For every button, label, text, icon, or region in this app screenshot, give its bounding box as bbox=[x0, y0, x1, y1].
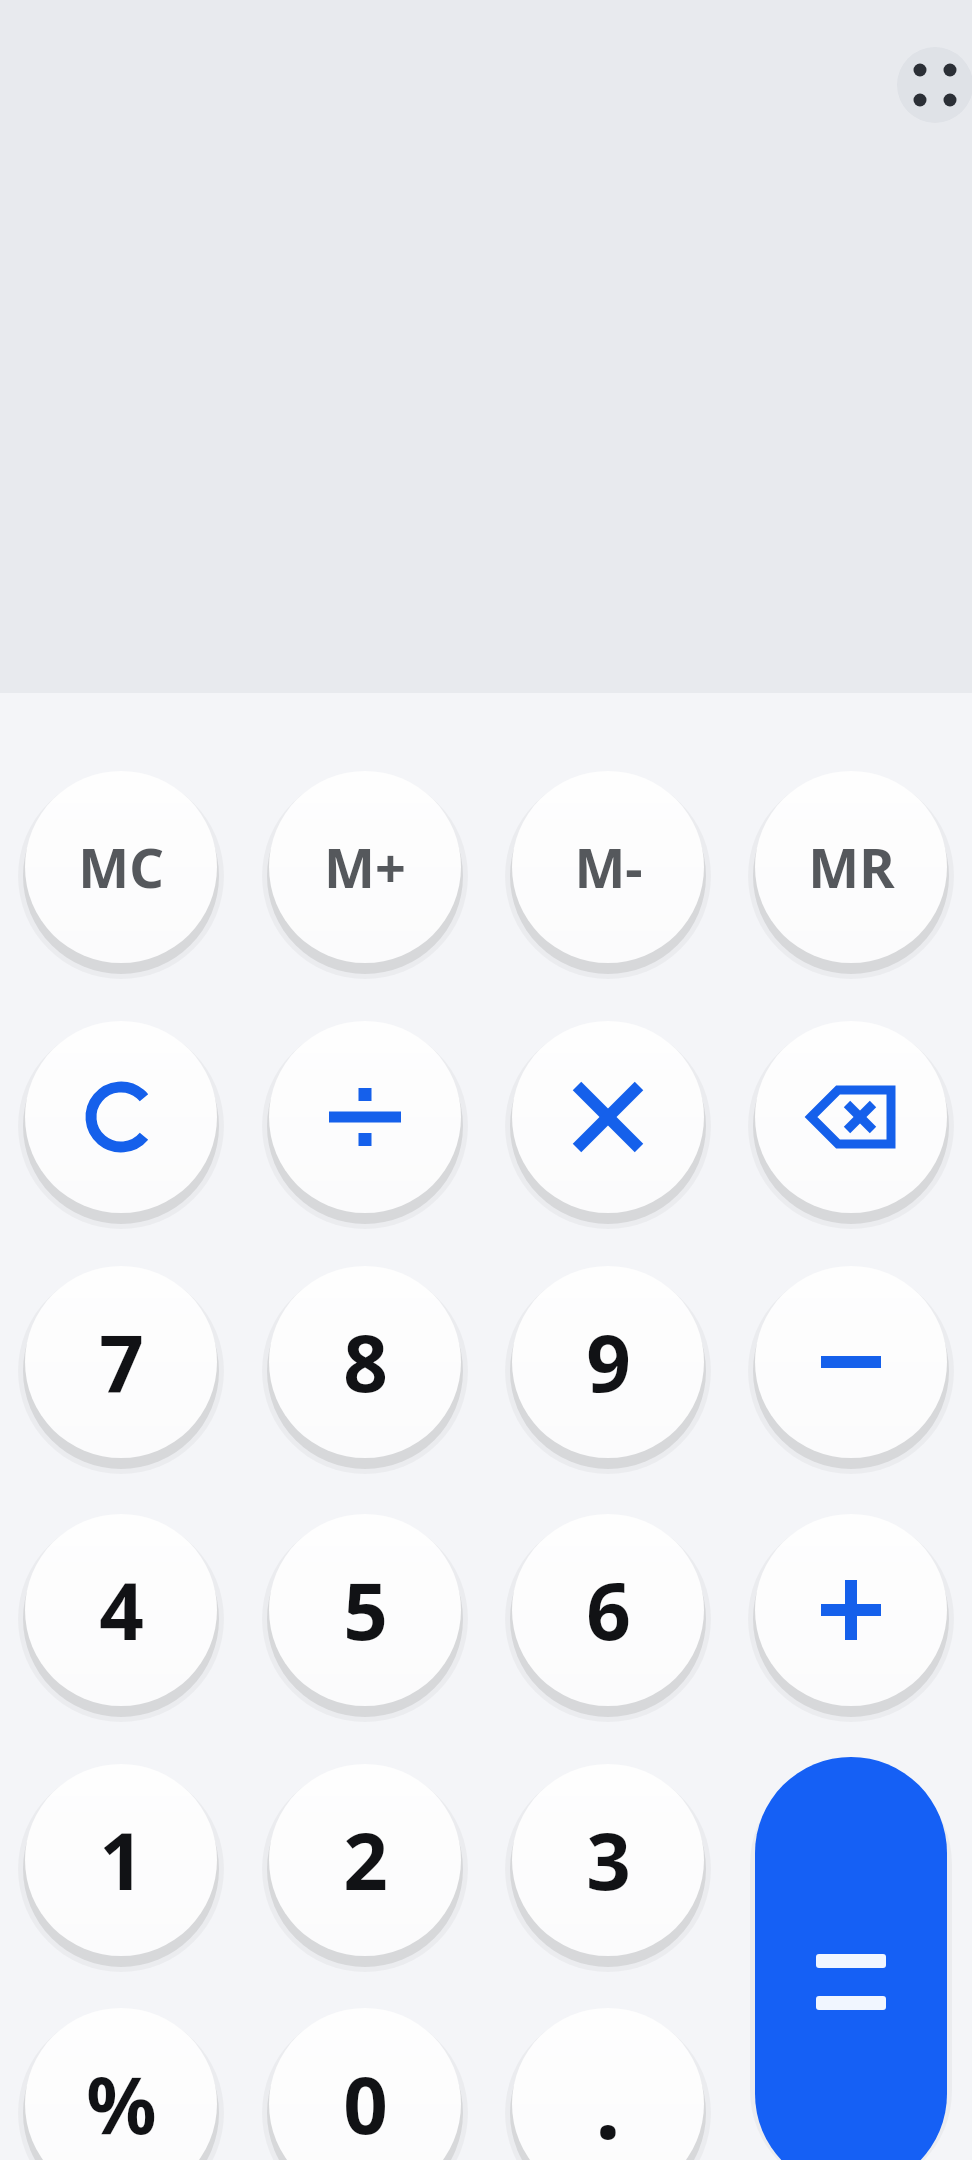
button[interactable]: Equals bbox=[755, 1757, 947, 2160]
button[interactable]: Divide bbox=[269, 1021, 461, 1213]
button[interactable]: Plus bbox=[755, 1514, 947, 1706]
button[interactable]: Clear bbox=[25, 1021, 217, 1213]
button[interactable]: Backspace bbox=[755, 1021, 947, 1213]
button[interactable]: 4 bbox=[25, 1514, 217, 1706]
button[interactable]: . bbox=[512, 2008, 704, 2160]
button[interactable]: 9 bbox=[512, 1266, 704, 1458]
staticText: M+ bbox=[324, 830, 406, 904]
staticText: 1 bbox=[99, 1807, 144, 1913]
button[interactable]: 5 bbox=[269, 1514, 461, 1706]
staticText: MR bbox=[808, 830, 895, 904]
staticText: 2 bbox=[343, 1807, 388, 1913]
button[interactable]: M- bbox=[512, 771, 704, 963]
staticText: 8 bbox=[343, 1309, 388, 1415]
staticText: 7 bbox=[99, 1309, 144, 1415]
button[interactable]: M+ bbox=[269, 771, 461, 963]
button[interactable]: 2 bbox=[269, 1764, 461, 1956]
button[interactable]: Multiply bbox=[512, 1021, 704, 1213]
staticText: 3 bbox=[586, 1807, 631, 1913]
staticText: . bbox=[595, 2043, 621, 2160]
button[interactable]: 6 bbox=[512, 1514, 704, 1706]
staticText: 6 bbox=[586, 1557, 631, 1663]
staticText: 9 bbox=[586, 1309, 631, 1415]
button[interactable]: 0 bbox=[269, 2008, 461, 2160]
staticText: 5 bbox=[343, 1557, 388, 1663]
button[interactable]: 3 bbox=[512, 1764, 704, 1956]
button[interactable]: MR bbox=[755, 771, 947, 963]
button[interactable]: MC bbox=[25, 771, 217, 963]
button[interactable]: 1 bbox=[25, 1764, 217, 1956]
staticText: % bbox=[86, 2051, 157, 2157]
staticText: 4 bbox=[99, 1557, 144, 1663]
button[interactable]: 7 bbox=[25, 1266, 217, 1458]
button[interactable]: Minus bbox=[755, 1266, 947, 1458]
button[interactable]: More options bbox=[897, 47, 972, 123]
button[interactable]: 8 bbox=[269, 1266, 461, 1458]
staticText: MC bbox=[78, 830, 164, 904]
button[interactable]: % bbox=[25, 2008, 217, 2160]
staticText: M- bbox=[574, 830, 643, 904]
staticText: 0 bbox=[343, 2051, 388, 2157]
